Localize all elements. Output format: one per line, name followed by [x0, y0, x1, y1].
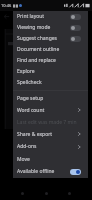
button[interactable]: Page setup — [13, 93, 88, 104]
staticText: Add-ons — [17, 143, 75, 150]
staticText: Page setup — [17, 95, 81, 102]
button[interactable]: Word count — [13, 104, 88, 116]
button[interactable]: Find and replace — [13, 55, 88, 66]
button[interactable]: Print layout — [13, 11, 88, 22]
button[interactable]: Add-ons — [13, 140, 88, 153]
staticText: Move — [17, 156, 81, 163]
staticText: Last edit was made 7 min ago — [17, 119, 81, 126]
button[interactable]: Share & export — [13, 128, 88, 140]
button[interactable]: Viewing mode — [13, 22, 88, 33]
button[interactable]: Document outline — [13, 44, 88, 55]
button[interactable]: Spellcheck — [13, 77, 88, 88]
staticText: Print layout — [17, 13, 70, 20]
staticText: Spellcheck — [17, 79, 81, 86]
staticText: Word count — [17, 107, 75, 114]
button[interactable]: Toggle off — [70, 25, 81, 31]
other: Open submenu — [75, 131, 81, 137]
staticText: Document outline — [17, 46, 81, 53]
staticText: 10:46 — [1, 3, 12, 8]
staticText: Available offline — [17, 168, 70, 175]
button[interactable]: Toggle off — [70, 14, 81, 20]
button[interactable]: Available offline — [13, 166, 88, 177]
button[interactable]: Suggest changes — [13, 33, 88, 44]
other: Open submenu — [75, 107, 81, 113]
staticText: Explore — [17, 68, 81, 75]
other: Open submenu — [75, 144, 81, 150]
button[interactable]: Toggle on — [70, 169, 81, 175]
button[interactable]: Explore — [13, 66, 88, 77]
staticText: Viewing mode — [17, 24, 70, 31]
button[interactable]: Last edit was made 7 min ago — [13, 116, 88, 128]
button[interactable]: Move — [13, 153, 88, 166]
staticText: Share & export — [17, 131, 75, 138]
button[interactable]: Toggle off — [70, 36, 81, 42]
staticText: Suggest changes — [17, 35, 70, 42]
staticText: Find and replace — [17, 57, 81, 64]
